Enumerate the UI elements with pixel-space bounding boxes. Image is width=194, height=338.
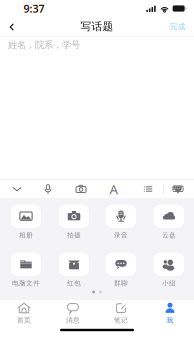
staticText: 消息	[66, 316, 80, 324]
button[interactable]: 完成	[165, 18, 189, 34]
button[interactable]: Voice input	[36, 180, 60, 197]
staticText: 云盘	[162, 231, 176, 239]
staticText: 拍摄	[67, 231, 81, 239]
staticText: 写话题	[80, 20, 113, 33]
button[interactable]: List	[136, 180, 160, 197]
staticText: 姓名，院系，学号	[8, 39, 80, 51]
button[interactable]: 小组	[146, 252, 192, 288]
staticText: 笔记	[114, 316, 128, 324]
staticText: 9:37	[23, 1, 44, 16]
staticText: 相册	[19, 231, 33, 239]
button[interactable]: 消息	[51, 300, 95, 326]
button[interactable]: Keyboard	[166, 180, 190, 197]
button[interactable]: Hide keyboard	[5, 180, 29, 197]
button[interactable]: 红包	[51, 252, 97, 288]
button[interactable]: 笔记	[99, 300, 143, 326]
staticText: 首页	[17, 316, 31, 324]
staticText: 红包	[67, 279, 81, 287]
button[interactable]: Back	[0, 18, 24, 36]
button[interactable]: 群聊	[98, 252, 144, 288]
staticText: 完成	[169, 22, 185, 31]
button[interactable]: Text style	[102, 180, 126, 197]
button[interactable]: 云盘	[146, 204, 192, 240]
button[interactable]: 我	[148, 300, 192, 326]
button[interactable]: 电脑文件	[3, 252, 49, 288]
button[interactable]: 拍摄	[51, 204, 97, 240]
button[interactable]: 首页	[2, 300, 46, 326]
staticText: 小组	[162, 279, 176, 287]
button[interactable]: Camera	[69, 180, 93, 197]
button[interactable]: 录音	[98, 204, 144, 240]
staticText: 录音	[114, 231, 128, 239]
staticText: A	[109, 180, 118, 198]
staticText: 群聊	[114, 279, 128, 287]
staticText: 我	[166, 316, 173, 324]
button[interactable]: 相册	[3, 204, 49, 240]
staticText: 电脑文件	[12, 279, 40, 287]
